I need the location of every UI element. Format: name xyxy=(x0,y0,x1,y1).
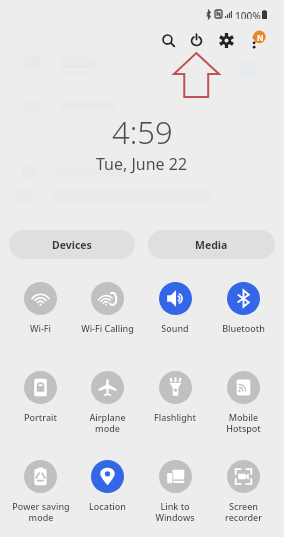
staticText: Mobile Hotspot xyxy=(226,411,261,435)
button[interactable]: Flashlight xyxy=(141,371,209,423)
button[interactable]: Search xyxy=(154,26,182,54)
staticText: Power saving mode xyxy=(12,500,70,524)
staticText: Devices xyxy=(52,238,92,252)
button[interactable]: Airplane mode xyxy=(74,371,141,435)
button[interactable]: Power saving mode xyxy=(7,460,74,524)
button[interactable]: Bluetooth xyxy=(209,282,277,334)
button[interactable]: Link to Windows xyxy=(141,460,209,524)
staticText: Flashlight xyxy=(154,411,196,423)
button[interactable]: Power xyxy=(182,26,210,54)
button[interactable]: Wi-Fi Calling xyxy=(74,282,141,334)
staticText: Wi-Fi xyxy=(30,322,51,334)
staticText: Sound xyxy=(161,322,189,334)
staticText: 4:59 xyxy=(112,111,173,153)
button[interactable]: Screen recorder xyxy=(209,460,277,524)
staticText: Wi-Fi Calling xyxy=(81,322,134,334)
staticText: Location xyxy=(89,500,126,512)
button[interactable]: Location xyxy=(74,460,141,512)
staticText: N xyxy=(257,32,264,43)
staticText: Airplane mode xyxy=(89,411,126,435)
button[interactable]: Wi-Fi xyxy=(7,282,74,334)
button[interactable]: Media xyxy=(148,230,275,259)
button[interactable]: Portrait xyxy=(7,371,74,423)
button[interactable]: Mobile Hotspot xyxy=(209,371,277,435)
staticText: Portrait xyxy=(24,411,57,423)
staticText: Screen recorder xyxy=(225,500,262,524)
staticText: Media xyxy=(195,238,228,252)
button[interactable]: Sound xyxy=(141,282,209,334)
staticText: Tue, June 22 xyxy=(96,153,188,175)
staticText: Bluetooth xyxy=(222,322,265,334)
button[interactable]: Devices xyxy=(9,230,135,259)
staticText: Link to Windows xyxy=(155,500,195,524)
button[interactable]: More options xyxy=(243,26,271,54)
button[interactable]: Settings xyxy=(212,26,240,54)
staticText: 100% xyxy=(235,9,261,19)
